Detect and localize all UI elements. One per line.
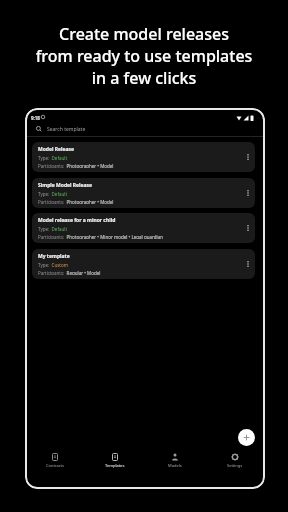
button[interactable]: Search template: [25, 122, 265, 136]
staticText: Simple Model Release: [38, 182, 93, 189]
button[interactable]: My template: [32, 249, 255, 279]
button[interactable]: Settings: [205, 453, 265, 468]
staticText: Participants: Photographer • Minor model…: [38, 234, 164, 239]
staticText: Type: Default: [38, 155, 68, 161]
button[interactable]: Contracts: [25, 453, 85, 468]
staticText: Search template: [47, 126, 86, 133]
staticText: Participants: Photographer • Model: [38, 163, 114, 168]
staticText: Settings: [227, 463, 243, 468]
staticText: Model release for a minor child: [38, 217, 116, 224]
button[interactable]: [238, 429, 255, 446]
staticText: Type: Default: [38, 191, 68, 197]
staticText: Contracts: [46, 463, 64, 468]
staticText: Type: Default: [38, 226, 68, 232]
staticText: Participants: Regular • Model: [38, 270, 101, 275]
staticText: My template: [38, 253, 70, 260]
staticText: 9:18: [31, 115, 40, 121]
staticText: Model Release: [38, 146, 75, 153]
button[interactable]: Model release for a minor child: [32, 213, 255, 243]
staticText: Participants: Photographer • Model: [38, 199, 114, 204]
button[interactable]: Models: [145, 453, 205, 468]
staticText: Type: Custom: [38, 262, 68, 268]
button[interactable]: Model Release: [32, 142, 255, 172]
staticText: Create model releases from ready to use …: [0, 23, 288, 89]
staticText: Templates: [105, 463, 125, 468]
button[interactable]: Templates: [85, 453, 145, 468]
staticText: Models: [168, 463, 182, 468]
button[interactable]: Simple Model Release: [32, 178, 255, 208]
